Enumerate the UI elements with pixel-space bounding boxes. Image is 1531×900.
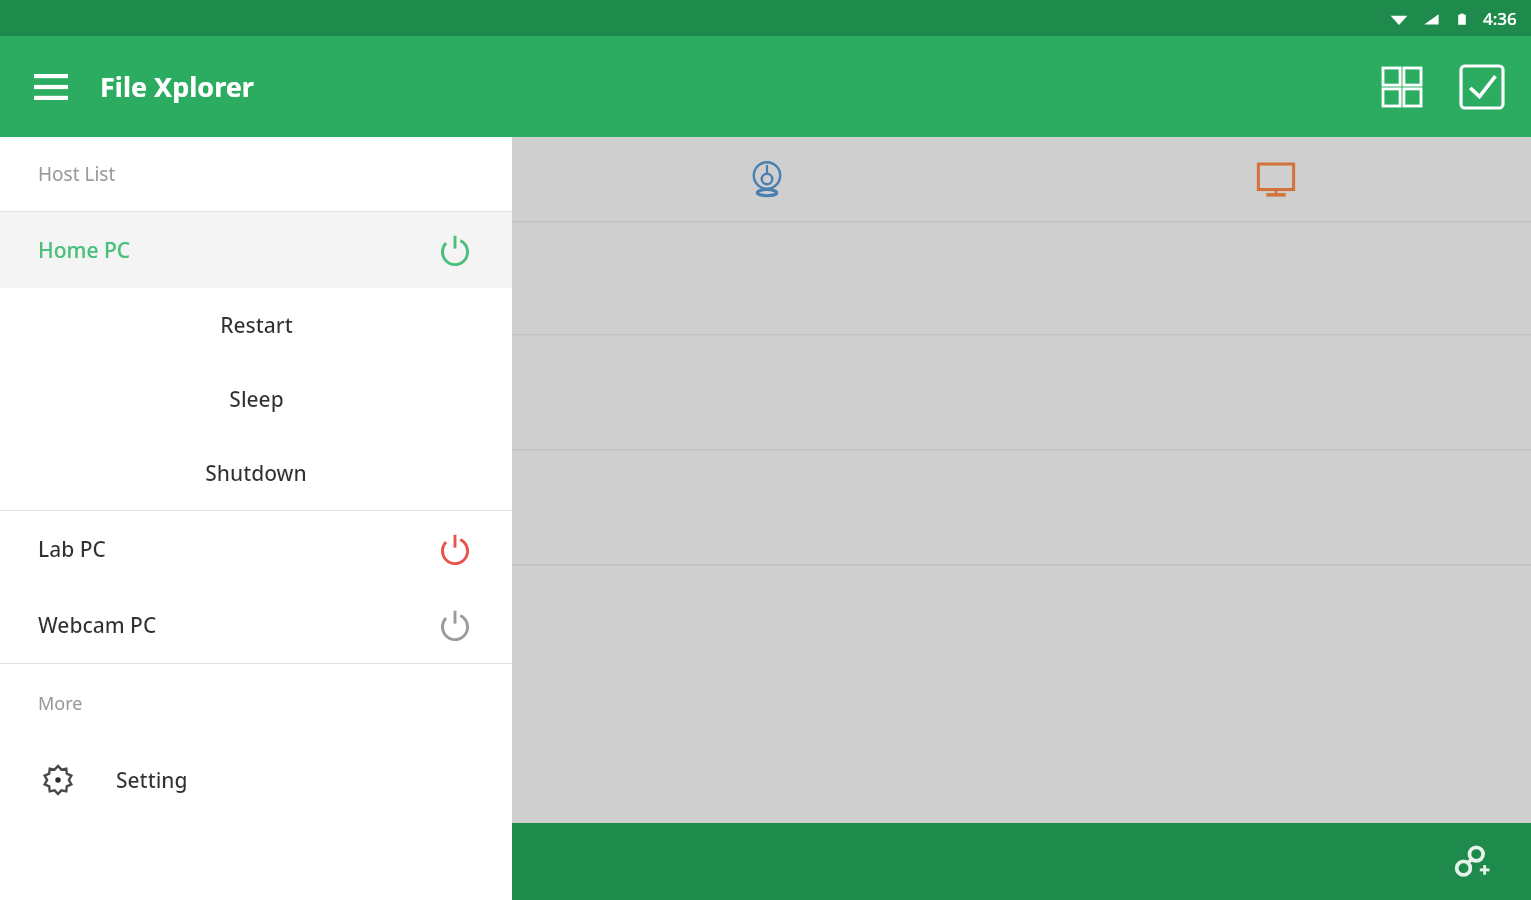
button[interactable]: Select all <box>1451 56 1513 118</box>
staticText: Webcam PC <box>38 611 157 640</box>
button[interactable]: Add link <box>1443 834 1499 890</box>
button[interactable]: Setting <box>0 742 512 818</box>
button[interactable]: Restart <box>0 288 512 362</box>
staticText: File Xplorer <box>100 68 254 105</box>
staticText: Restart <box>220 311 293 340</box>
staticText: More <box>38 691 83 716</box>
button[interactable]: Open navigation drawer <box>22 58 80 116</box>
button[interactable]: Shutdown <box>0 436 512 510</box>
staticText: Home PC <box>38 236 131 265</box>
button[interactable]: Webcam PC <box>0 587 512 663</box>
staticText: Host List <box>38 161 116 187</box>
staticText: 4:36 <box>1483 7 1517 30</box>
button[interactable]: Remote host <box>512 137 1021 221</box>
button[interactable]: Grid view <box>1371 56 1433 118</box>
staticText: Sleep <box>229 385 284 414</box>
staticText: Setting <box>116 766 188 795</box>
button[interactable]: Sleep <box>0 362 512 436</box>
button[interactable]: Desktop <box>1021 137 1531 221</box>
staticText: Lab PC <box>38 535 106 564</box>
staticText: Shutdown <box>205 459 307 488</box>
button[interactable]: Home PC <box>0 212 512 288</box>
button[interactable]: Lab PC <box>0 511 512 587</box>
